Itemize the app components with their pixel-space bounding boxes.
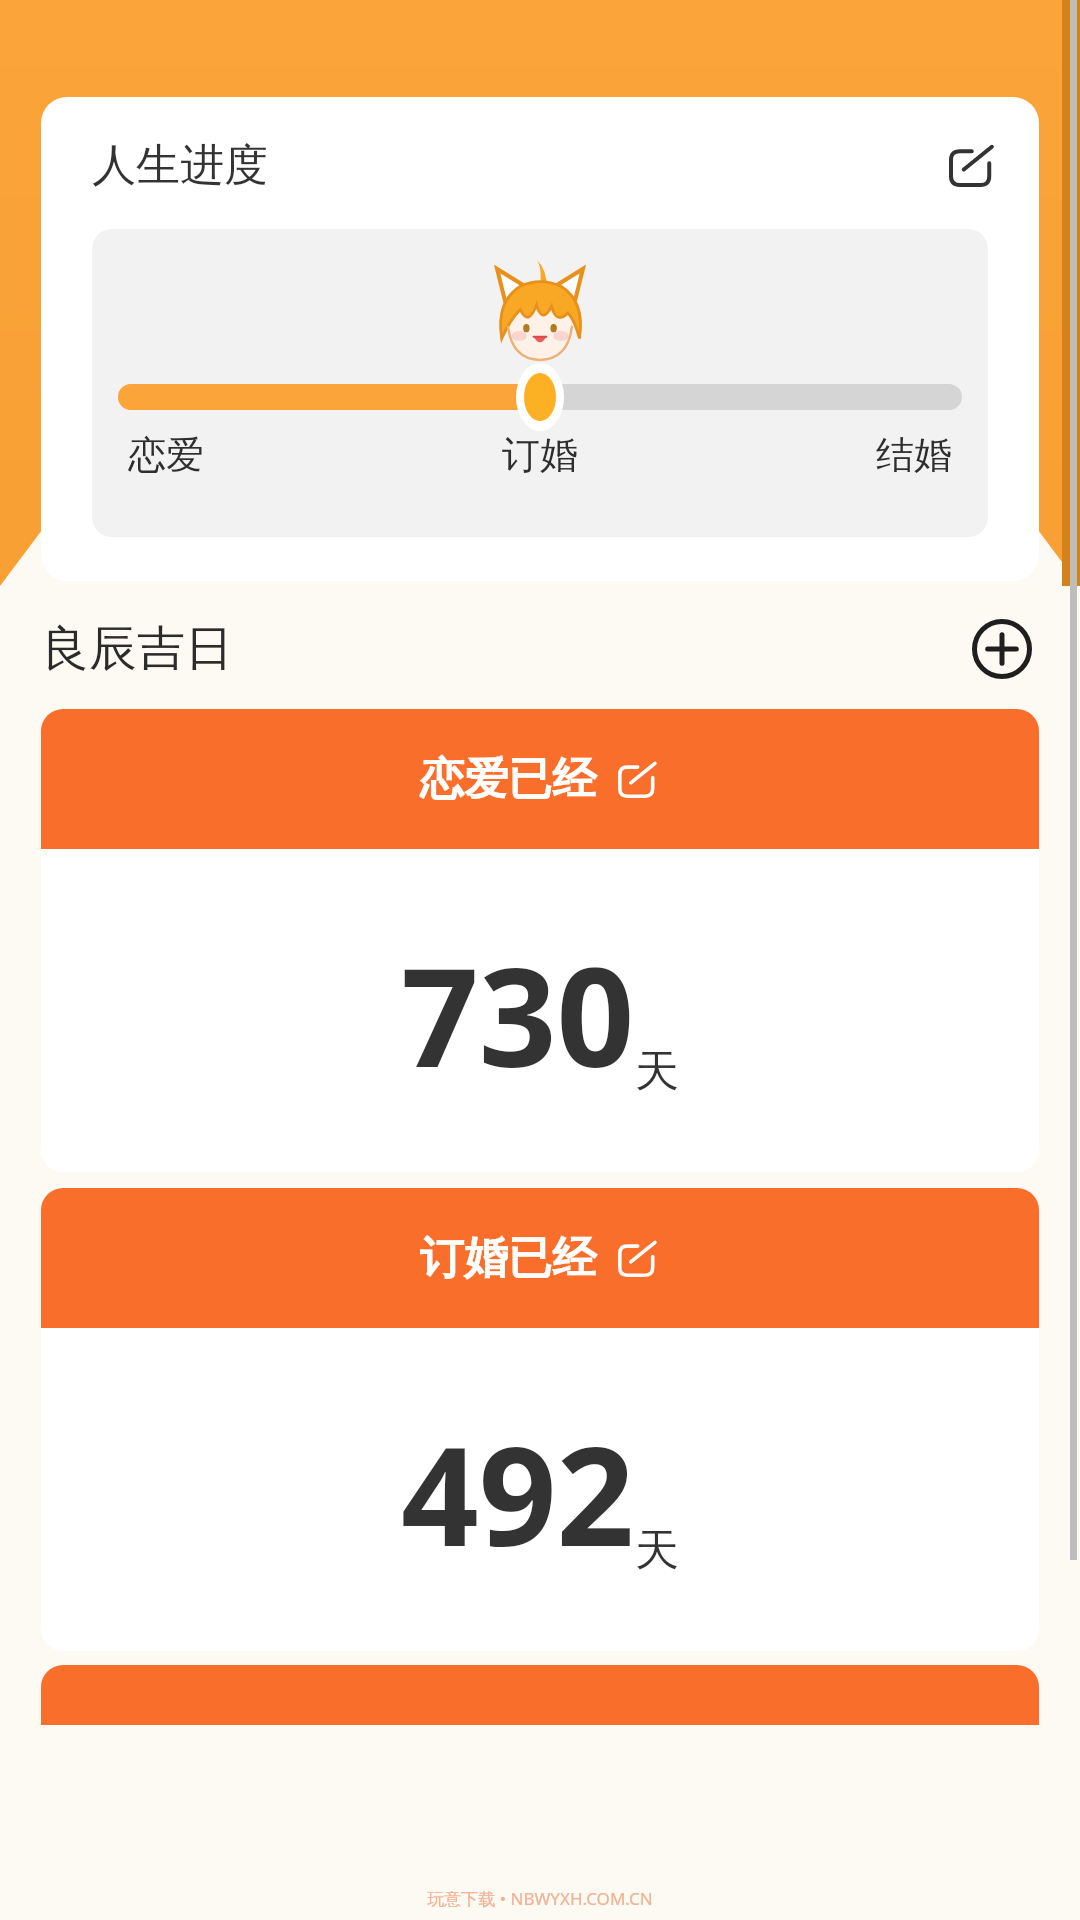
staticText: 订婚	[502, 431, 578, 479]
staticText: 结婚	[876, 431, 952, 479]
button[interactable]: Edit life progress	[943, 137, 999, 193]
button[interactable]: 订婚已经	[41, 1188, 1039, 1651]
button[interactable]: 结婚	[677, 431, 952, 479]
staticText: 玩意下载 • NBWYXH.COM.CN	[427, 1887, 653, 1910]
button[interactable]: Add	[968, 615, 1036, 683]
staticText: 恋爱	[128, 431, 204, 479]
button[interactable]: 人生进度	[41, 97, 1039, 581]
staticText: 良辰吉日	[41, 619, 233, 679]
button[interactable]: 恋爱已经	[41, 709, 1039, 1172]
other: Edit 订婚已经	[614, 1235, 660, 1281]
button[interactable]: 恋爱已经	[41, 709, 1039, 849]
staticText: 恋爱已经	[420, 752, 596, 807]
button[interactable]: 订婚	[402, 431, 677, 479]
staticText: 人生进度	[92, 138, 268, 193]
button[interactable]: Progress slider	[118, 375, 962, 419]
button[interactable]: 恋爱	[128, 431, 402, 479]
staticText: 订婚已经	[420, 1231, 596, 1286]
staticText: 天	[635, 1523, 679, 1578]
staticText: 492	[401, 1401, 635, 1586]
staticText: 天	[635, 1044, 679, 1099]
staticText: 730	[401, 922, 635, 1107]
other: Edit 恋爱已经	[614, 756, 660, 802]
button[interactable]: 订婚已经	[41, 1188, 1039, 1328]
button[interactable]	[41, 1665, 1039, 1725]
